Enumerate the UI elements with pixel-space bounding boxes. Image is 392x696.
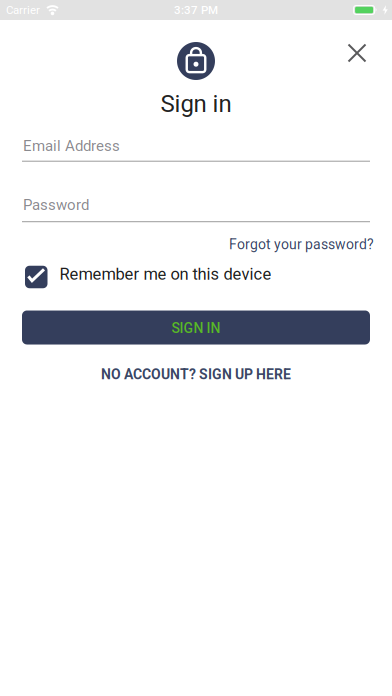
staticText: 3:37 PM	[174, 3, 218, 17]
staticText: SIGN IN	[171, 320, 220, 336]
button[interactable]: NO ACCOUNT? SIGN UP HERE	[101, 366, 291, 383]
button[interactable]	[338, 34, 375, 71]
staticText: Sign in	[160, 90, 231, 118]
button[interactable]: Remember me on this device	[25, 266, 271, 288]
button[interactable]: SIGN IN	[22, 310, 370, 344]
staticText: Carrier	[6, 3, 40, 17]
staticText: Email Address	[23, 137, 120, 155]
button[interactable]: Email Address	[22, 137, 370, 162]
staticText: Remember me on this device	[59, 264, 271, 284]
staticText: NO ACCOUNT? SIGN UP HERE	[101, 366, 291, 383]
staticText: Password	[23, 196, 89, 214]
button[interactable]: Forgot your password?	[229, 236, 374, 253]
staticText: Forgot your password?	[229, 236, 374, 253]
button[interactable]: Password	[22, 196, 370, 222]
